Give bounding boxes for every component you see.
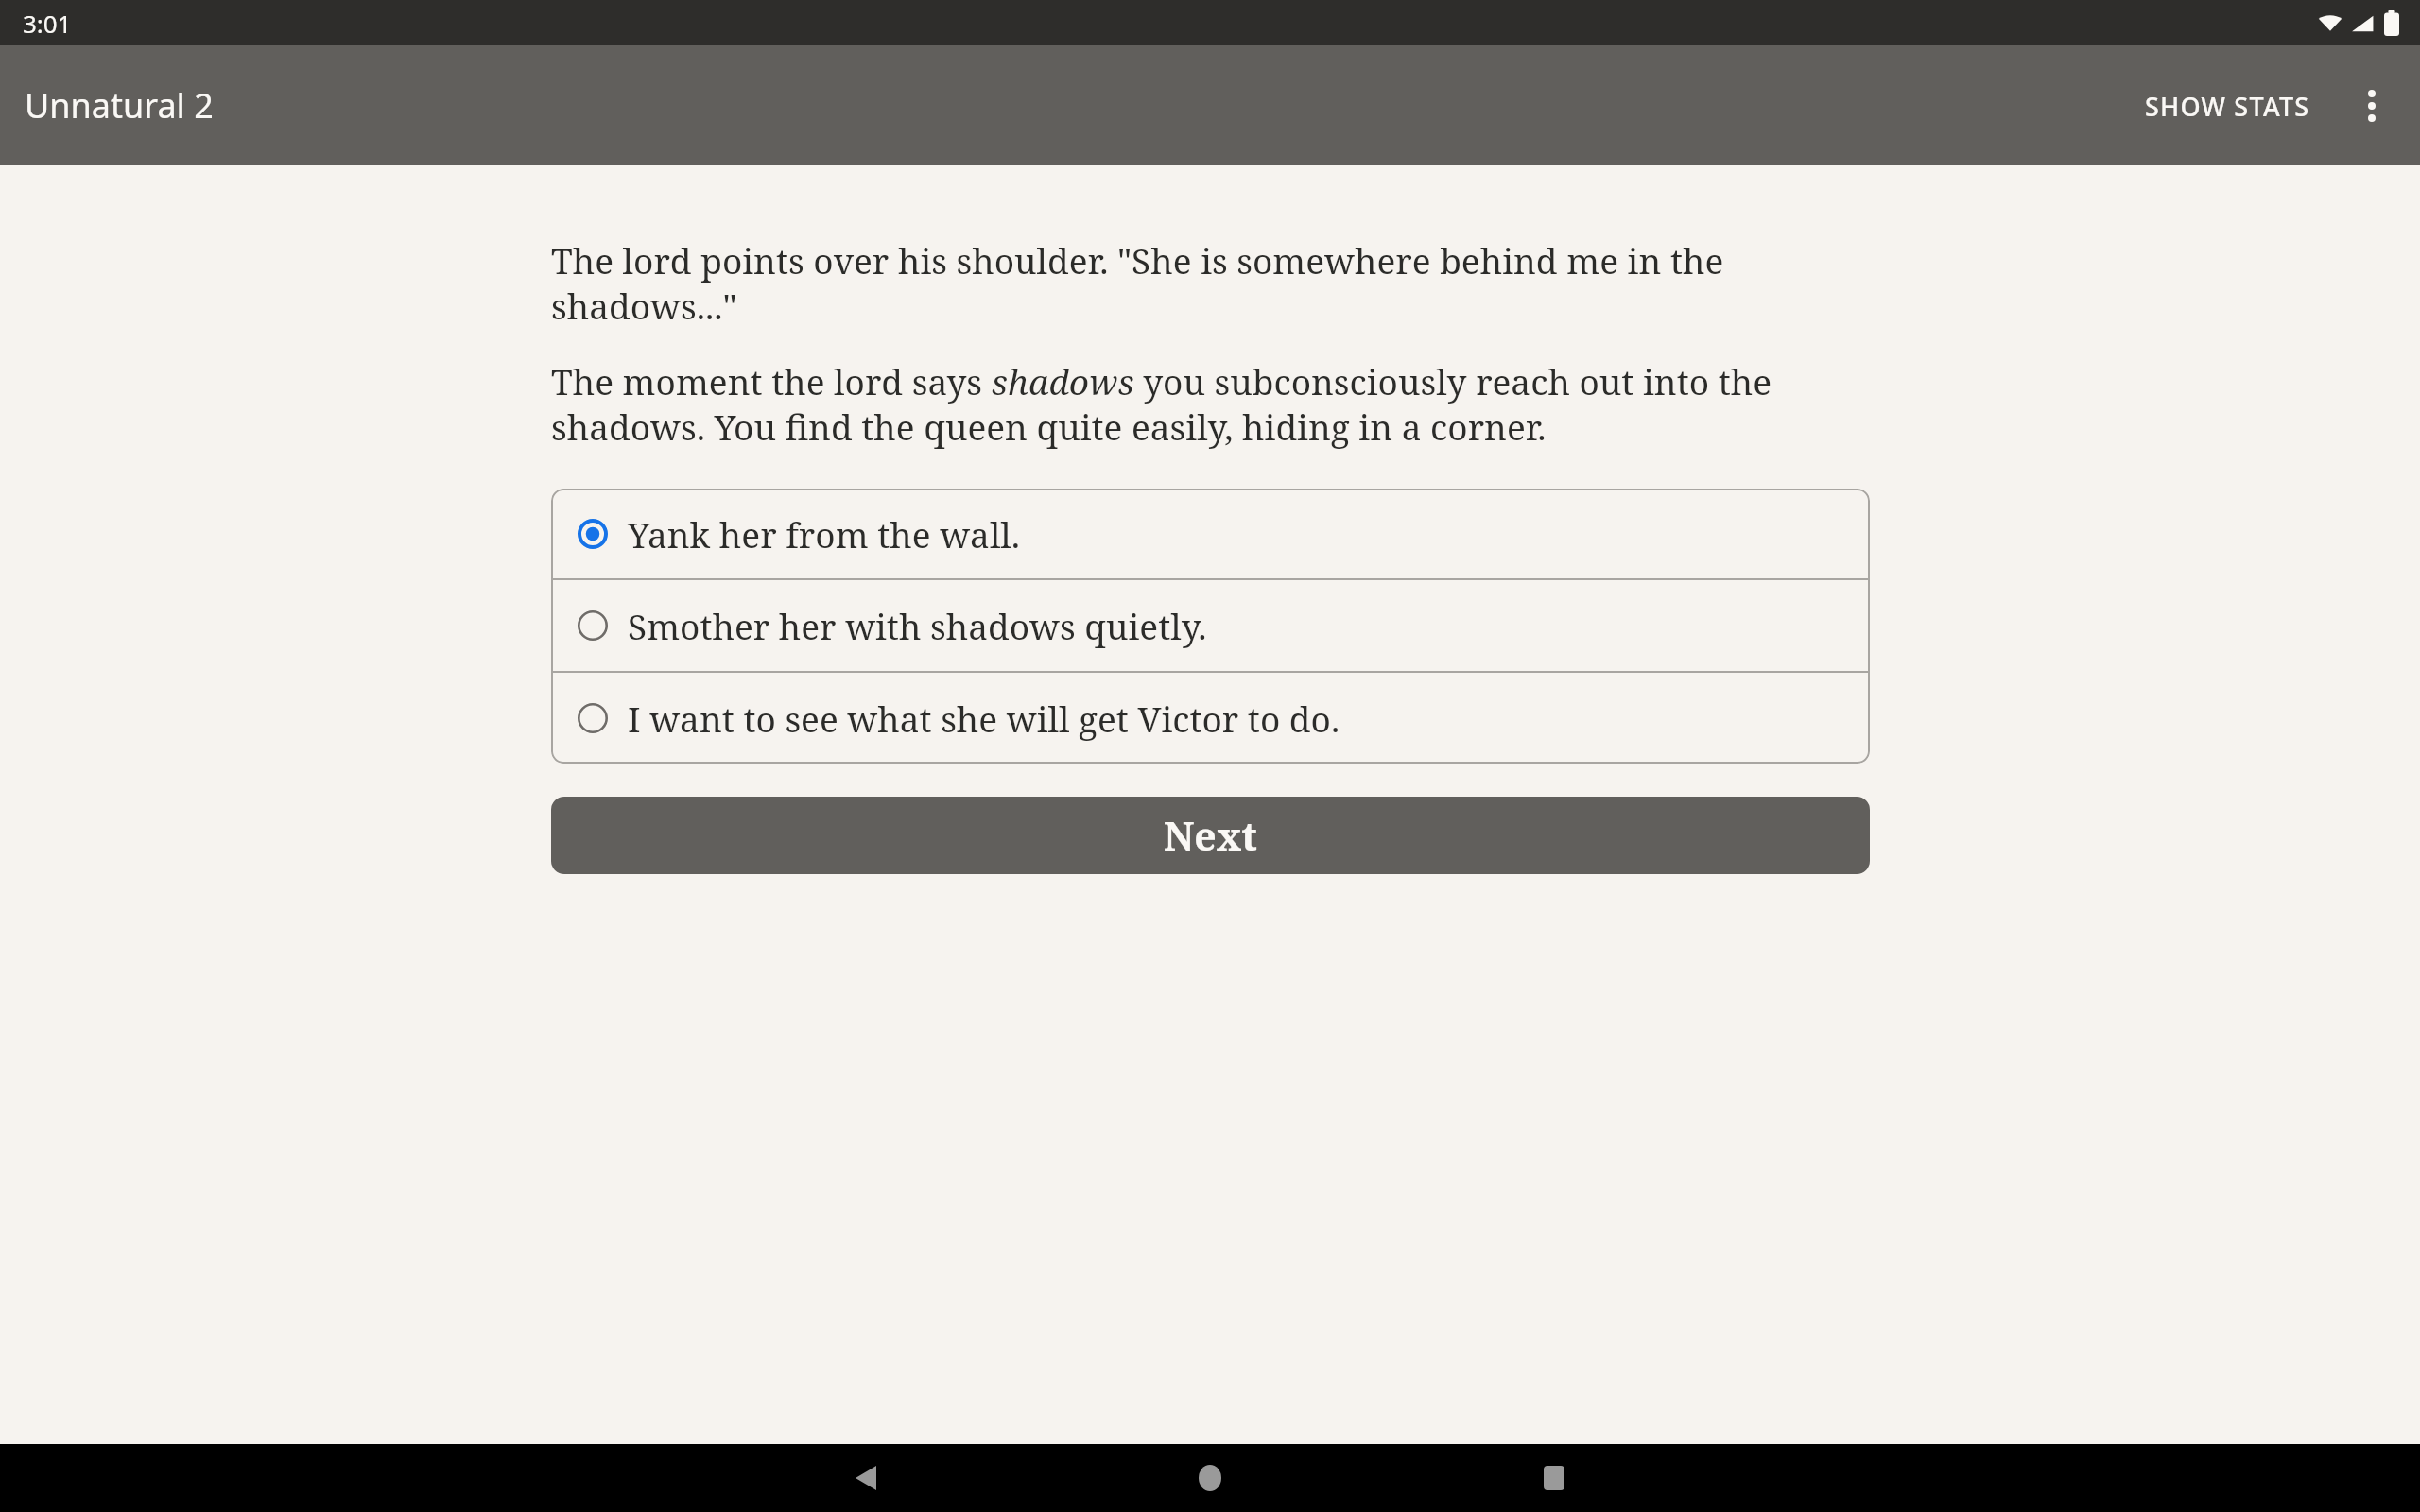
button[interactable]: Yank her from the wall. xyxy=(551,489,1870,578)
staticText: I want to see what she will get Victor t… xyxy=(628,695,1340,742)
staticText: Smother her with shadows quietly. xyxy=(628,602,1207,649)
button[interactable]: Home xyxy=(1176,1444,1244,1512)
staticText: Next xyxy=(1164,809,1257,862)
button[interactable]: Back xyxy=(832,1444,900,1512)
button[interactable]: SHOW STATS xyxy=(2124,74,2331,139)
staticText: SHOW STATS xyxy=(2145,89,2310,124)
button[interactable]: Smother her with shadows quietly. xyxy=(551,580,1870,671)
staticText: Unnatural 2 xyxy=(25,82,214,129)
staticText: 3:01 xyxy=(23,7,72,40)
staticText: Yank her from the wall. xyxy=(628,510,1021,558)
button[interactable]: Recents xyxy=(1520,1444,1588,1512)
staticText: The lord points over his shoulder. "She … xyxy=(551,236,1870,330)
button[interactable]: I want to see what she will get Victor t… xyxy=(551,673,1870,764)
button[interactable]: More options xyxy=(2331,65,2412,146)
button[interactable]: Next xyxy=(551,797,1870,874)
staticText: The moment the lord says shadows you sub… xyxy=(551,357,1870,451)
